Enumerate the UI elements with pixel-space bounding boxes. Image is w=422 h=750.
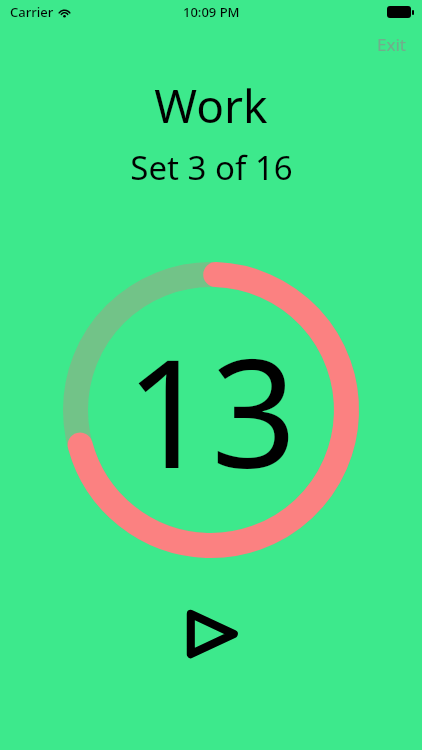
staticText: 13 [125, 308, 297, 512]
staticText: Set 3 of 16 [130, 145, 293, 190]
staticText: Carrier [10, 3, 54, 21]
staticText: 10:09 PM [183, 3, 240, 21]
staticText: Exit [377, 33, 406, 56]
button[interactable]: Exit [371, 30, 412, 59]
button[interactable]: Play [179, 602, 243, 666]
staticText: Work [154, 74, 268, 137]
